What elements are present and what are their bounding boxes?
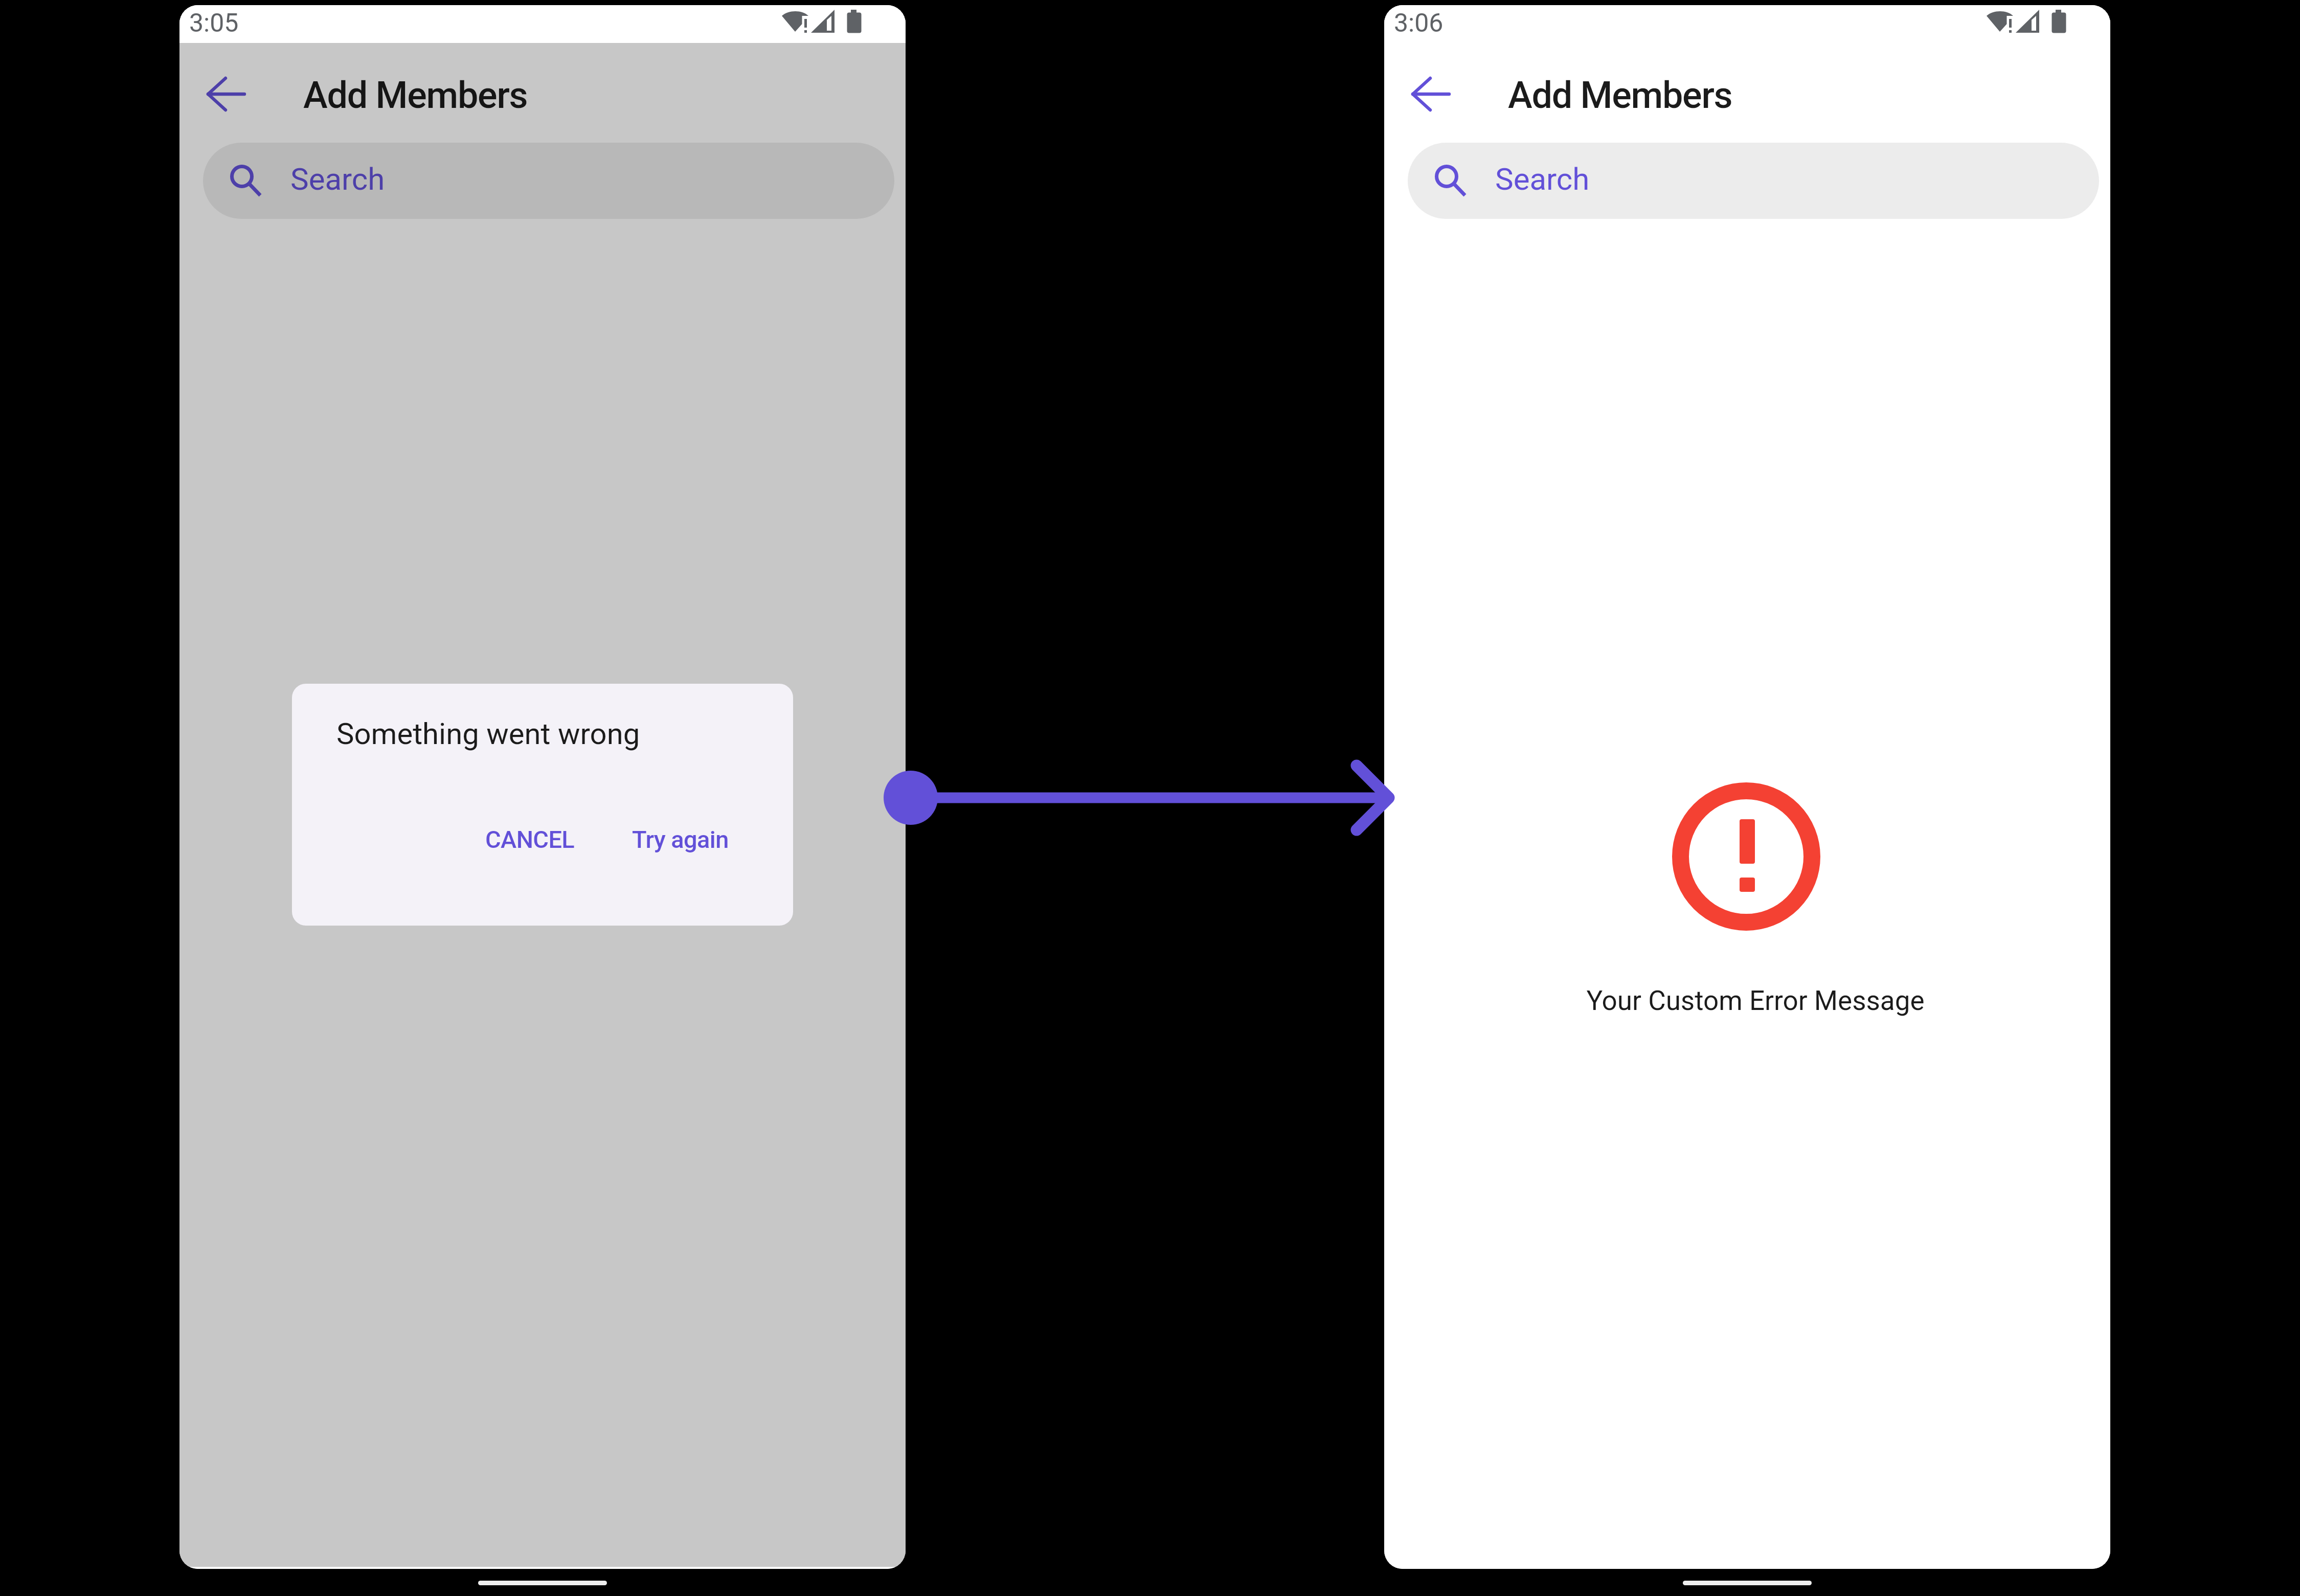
staticText: Add Members <box>303 74 528 117</box>
button[interactable]: Search <box>1408 143 2099 219</box>
staticText: 3:06 <box>1394 8 1444 38</box>
button[interactable]: Back <box>204 68 257 121</box>
staticText: Your Custom Error Message <box>1392 985 2110 1017</box>
staticText: Search <box>290 161 385 197</box>
staticText: Try again <box>632 825 729 853</box>
button[interactable]: Back <box>1408 68 1461 121</box>
staticText: Something went wrong <box>336 716 640 751</box>
staticText: Add Members <box>1508 74 1732 117</box>
staticText: Search <box>1495 161 1590 197</box>
button[interactable]: CANCEL <box>468 814 591 865</box>
staticText: CANCEL <box>485 825 575 853</box>
button[interactable]: Try again <box>619 814 741 865</box>
staticText: 3:05 <box>189 8 239 38</box>
button[interactable]: Search <box>203 143 894 219</box>
